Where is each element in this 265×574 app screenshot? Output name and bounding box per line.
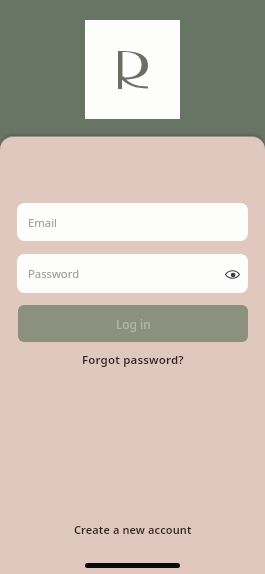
button[interactable]: Password (17, 254, 248, 293)
staticText: Password (28, 266, 80, 281)
staticText: Forgot password? (82, 352, 184, 368)
staticText: Create a new account (74, 522, 192, 537)
button[interactable]: Create a new account (0, 516, 265, 542)
button[interactable]: Email (17, 203, 248, 241)
staticText: Log in (116, 316, 151, 332)
button[interactable]: Show password (222, 264, 242, 284)
button[interactable]: Log in (18, 305, 248, 342)
staticText: Email (28, 215, 58, 230)
button[interactable]: Forgot password? (0, 347, 265, 373)
